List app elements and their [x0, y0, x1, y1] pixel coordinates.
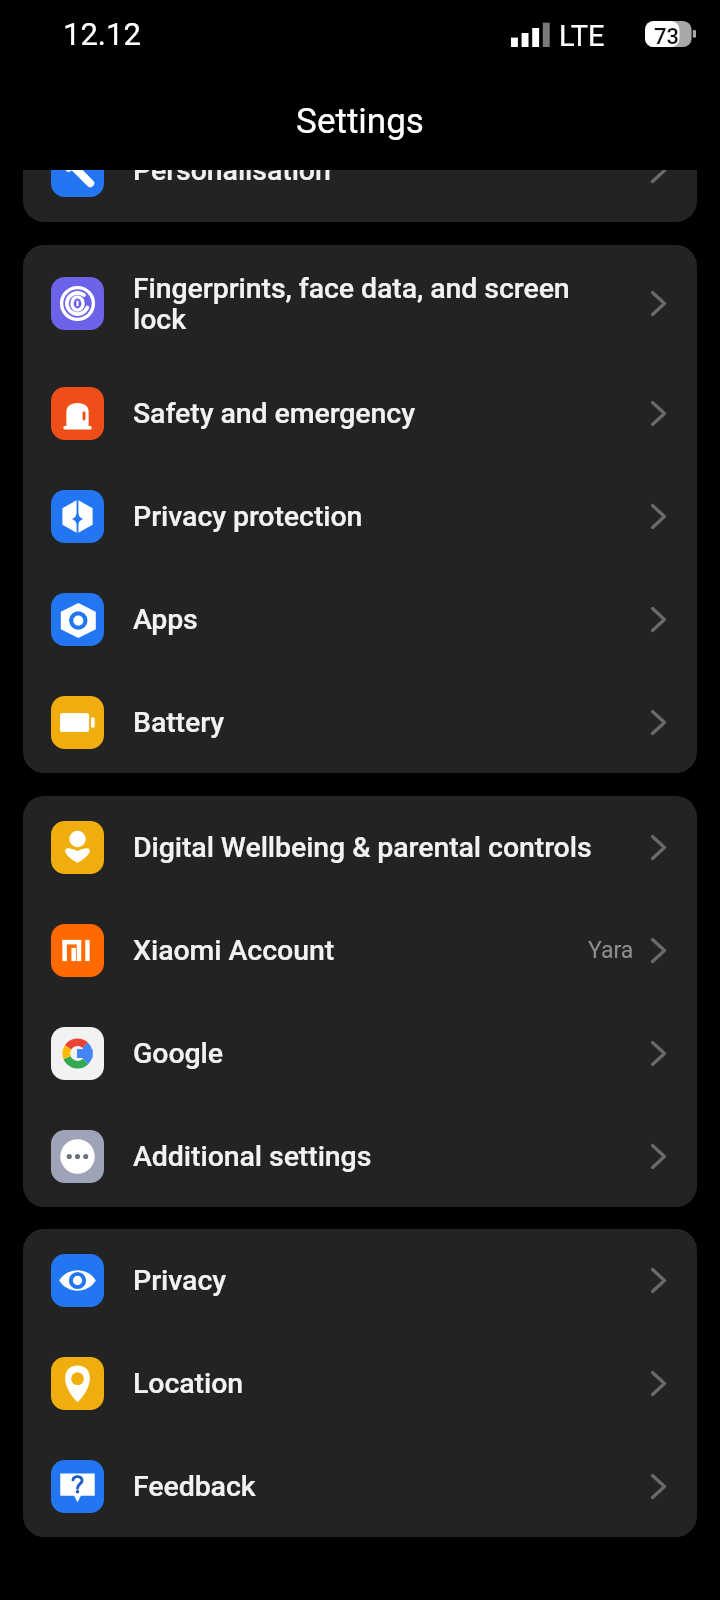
staticText: Feedback [133, 1470, 651, 1503]
staticText: Location [133, 1367, 651, 1400]
staticText: Personalisation [133, 170, 651, 187]
button[interactable]: Feedback [23, 1435, 697, 1537]
button[interactable]: Digital Wellbeing & parental controls [23, 796, 697, 899]
staticText: Digital Wellbeing & parental controls [133, 831, 651, 864]
staticText: Settings [0, 101, 720, 142]
button[interactable]: Privacy protection [23, 465, 697, 568]
button[interactable]: Xiaomi Account [23, 899, 697, 1002]
button[interactable]: Battery [23, 671, 697, 773]
button[interactable]: Fingerprints, face data, and screen lock [23, 245, 697, 362]
staticText: Safety and emergency [133, 397, 651, 430]
staticText: Battery [133, 706, 651, 739]
other: Mobile signal strength [511, 22, 550, 47]
button[interactable]: Location [23, 1332, 697, 1435]
button[interactable]: Google [23, 1002, 697, 1105]
staticText: Fingerprints, face data, and screen lock [133, 272, 627, 336]
staticText: 12.12 [63, 16, 141, 52]
staticText: LTE [559, 19, 605, 53]
other: Battery 73 percent [645, 21, 696, 47]
button[interactable]: Privacy [23, 1229, 697, 1332]
button[interactable]: Additional settings [23, 1105, 697, 1207]
staticText: 73 [654, 24, 680, 50]
button[interactable]: Safety and emergency [23, 362, 697, 465]
staticText: Additional settings [133, 1140, 651, 1173]
button[interactable]: Personalisation [23, 170, 697, 222]
button[interactable]: Apps [23, 568, 697, 671]
staticText: Google [133, 1037, 651, 1070]
staticText: Xiaomi Account [133, 934, 588, 967]
staticText: Privacy protection [133, 500, 651, 533]
staticText: Privacy [133, 1264, 651, 1297]
staticText: Apps [133, 603, 651, 636]
staticText: Yara [588, 937, 634, 964]
